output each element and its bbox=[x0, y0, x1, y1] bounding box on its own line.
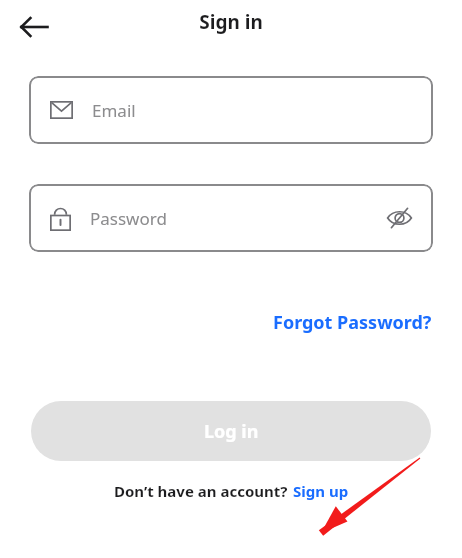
staticText: Sign in bbox=[0, 9, 462, 35]
button[interactable]: Show password bbox=[383, 202, 415, 234]
button[interactable]: Forgot Password? bbox=[271, 306, 434, 339]
button[interactable]: Password field bbox=[29, 184, 433, 252]
button[interactable]: Sign up bbox=[293, 481, 349, 501]
button[interactable]: Log in bbox=[31, 401, 431, 461]
staticText: Log in bbox=[204, 419, 259, 444]
button[interactable]: Email field bbox=[29, 76, 433, 144]
staticText: Forgot Password? bbox=[273, 310, 432, 335]
button[interactable]: Back bbox=[12, 5, 56, 49]
staticText: Email bbox=[92, 99, 415, 122]
staticText: Don’t have an account? bbox=[114, 481, 288, 501]
staticText: Sign up bbox=[293, 481, 349, 501]
staticText: Password bbox=[90, 207, 383, 230]
